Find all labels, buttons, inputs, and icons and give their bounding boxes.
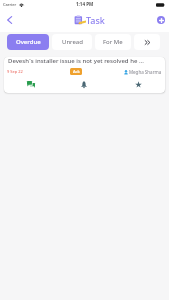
staticText: Carrier bbox=[3, 2, 17, 7]
staticText: For Me bbox=[103, 38, 123, 46]
staticText: Overdue bbox=[16, 38, 41, 46]
staticText: 1:14 PM bbox=[76, 1, 94, 7]
staticText: Devesh`s installer issue is not yet reso… bbox=[8, 57, 144, 65]
button[interactable]: Devesh`s installer issue is not yet reso… bbox=[4, 57, 165, 93]
button[interactable]: More filters bbox=[134, 34, 160, 50]
button[interactable]: Notify bbox=[57, 79, 111, 89]
button[interactable]: Add task bbox=[153, 8, 169, 32]
staticText: Unread bbox=[62, 38, 83, 46]
button[interactable]: For Me bbox=[95, 34, 131, 50]
button[interactable]: Comments bbox=[4, 79, 57, 89]
staticText: Megha Sharma bbox=[129, 69, 162, 75]
staticText: Ack bbox=[73, 69, 80, 74]
button[interactable]: Back bbox=[0, 8, 18, 32]
staticText: Task bbox=[86, 14, 105, 26]
staticText: 9 Sep 22 bbox=[7, 69, 23, 74]
button[interactable]: Overdue bbox=[7, 34, 49, 50]
button[interactable]: Unread bbox=[52, 34, 92, 50]
button[interactable]: Star bbox=[111, 79, 165, 89]
